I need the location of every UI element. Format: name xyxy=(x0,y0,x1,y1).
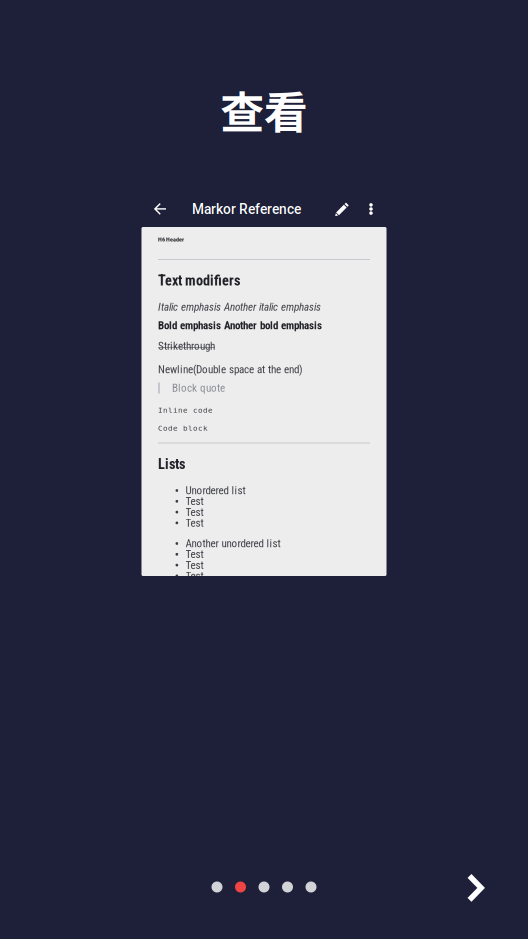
staticText: H6 Header xyxy=(158,236,184,243)
staticText: Test xyxy=(185,569,203,582)
staticText: Markor Reference xyxy=(192,201,301,217)
staticText: Bold emphasis Another bold emphasis xyxy=(158,319,322,332)
button[interactable]: Next xyxy=(448,860,504,916)
staticText: Code block xyxy=(158,424,208,432)
staticText: Unordered list xyxy=(185,484,245,497)
staticText: Strikethrough xyxy=(158,339,215,352)
staticText: Italic emphasis Another italic emphasis xyxy=(158,300,321,313)
button[interactable]: Back xyxy=(142,190,178,228)
staticText: Test xyxy=(185,516,203,529)
staticText: Test xyxy=(185,506,203,519)
staticText: Test xyxy=(185,495,203,508)
button[interactable]: Edit xyxy=(325,190,359,228)
staticText: Another unordered list xyxy=(185,537,280,550)
staticText: Text modifiers xyxy=(158,272,240,289)
staticText: 查看 xyxy=(220,78,308,141)
staticText: Inline code xyxy=(158,406,213,414)
staticText: Lists xyxy=(158,456,185,472)
button[interactable]: Markor Reference xyxy=(192,190,308,228)
button[interactable]: More options xyxy=(358,190,384,228)
staticText: Test xyxy=(185,548,203,561)
staticText: Test xyxy=(185,559,203,572)
staticText: Newline(Double space at the end) xyxy=(158,363,303,376)
staticText: Block quote xyxy=(172,381,225,394)
